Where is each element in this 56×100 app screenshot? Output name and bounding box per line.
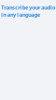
staticText: in any language: [1, 11, 40, 18]
staticText: Transcribe your audio: [1, 4, 55, 11]
